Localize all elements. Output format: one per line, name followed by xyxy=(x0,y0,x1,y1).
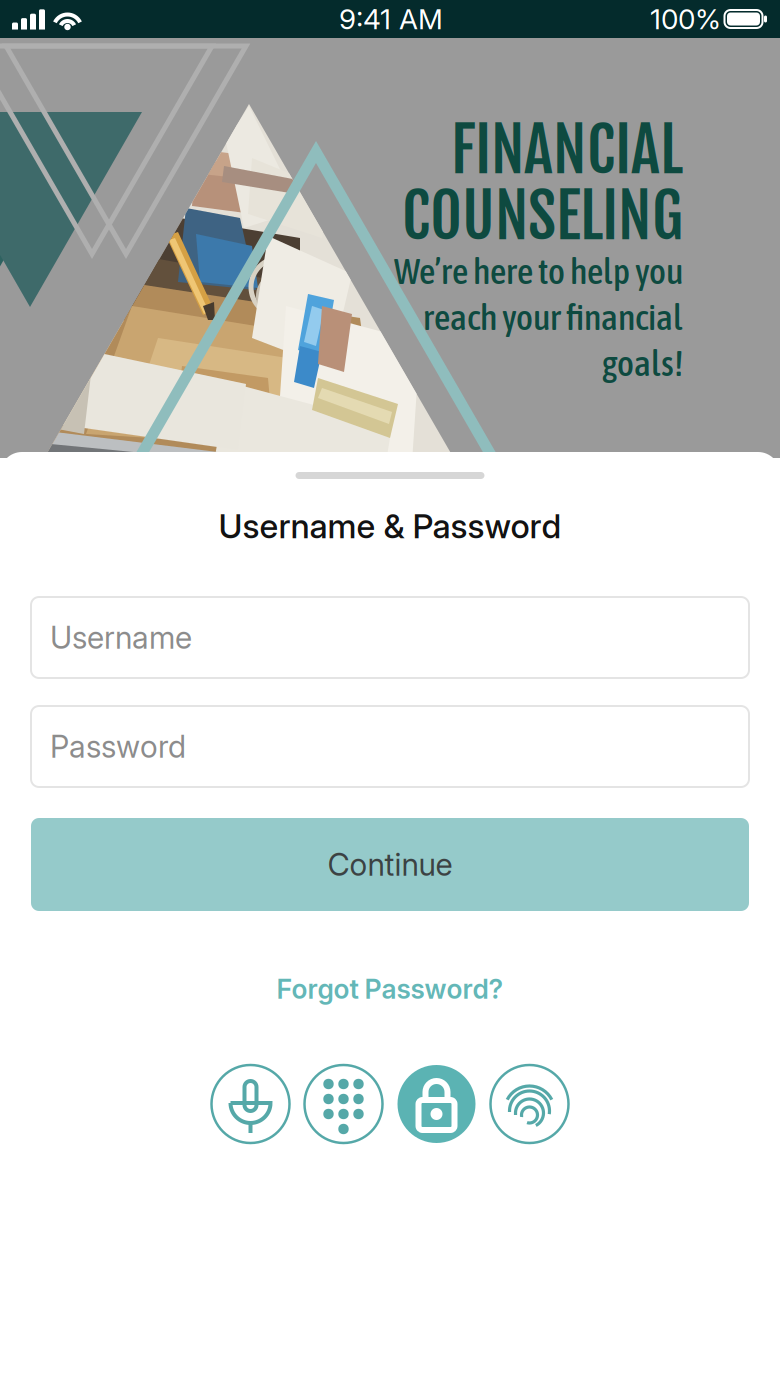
staticText: goals! xyxy=(602,342,683,384)
staticText: Username & Password xyxy=(218,506,561,546)
button[interactable]: Voice sign in xyxy=(211,1065,289,1143)
staticText: reach your financial xyxy=(423,296,683,338)
staticText: Password xyxy=(50,728,186,765)
staticText: 9:41 AM xyxy=(339,2,443,36)
button[interactable]: Password sign in xyxy=(397,1065,475,1143)
staticText: Continue xyxy=(327,846,452,883)
staticText: FINANCIAL xyxy=(451,111,683,189)
staticText: COUNSELING xyxy=(402,177,683,255)
staticText: Forgot Password? xyxy=(276,973,503,1005)
button[interactable]: Continue xyxy=(0,818,780,911)
button[interactable]: Fingerprint sign in xyxy=(490,1065,568,1143)
staticText: 100% xyxy=(650,2,721,36)
staticText: We’re here to help you xyxy=(394,250,683,292)
staticText: Username xyxy=(50,619,192,656)
button[interactable]: PIN keypad sign in xyxy=(304,1065,382,1143)
button[interactable]: Forgot Password? xyxy=(262,972,517,1006)
